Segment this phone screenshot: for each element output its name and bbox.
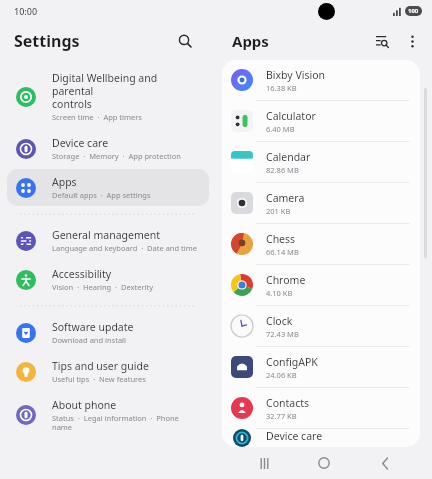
button[interactable]: Apps <box>7 169 209 206</box>
button[interactable]: Search and filter apps <box>370 29 394 53</box>
staticText: Language and keyboard · Date and time <box>52 243 197 253</box>
button[interactable]: Chess <box>222 224 420 264</box>
staticText: 66.14 MB <box>266 247 299 257</box>
staticText: Download and install <box>52 335 126 345</box>
staticText: 6.40 MB <box>266 124 295 134</box>
button[interactable]: Home <box>311 450 337 476</box>
staticText: Bixby Vision <box>266 68 326 82</box>
staticText: Camera <box>266 191 305 205</box>
staticText: Useful tips · New features <box>52 374 146 384</box>
staticText: About phone <box>52 398 117 412</box>
button[interactable]: Software update <box>7 314 209 351</box>
button[interactable]: Bixby Vision <box>222 60 420 100</box>
staticText: Storage · Memory · App protection <box>52 151 181 161</box>
staticText: 201 KB <box>266 206 291 216</box>
staticText: Default apps · App settings <box>52 190 151 200</box>
staticText: Vision · Hearing · Dexterity <box>52 282 154 292</box>
staticText: 72.43 MB <box>266 329 299 339</box>
staticText: 4.10 KB <box>266 288 293 298</box>
staticText: ConfigAPK <box>266 355 318 369</box>
staticText: 82.86 MB <box>266 165 299 175</box>
staticText: 24.06 KB <box>266 370 297 380</box>
button[interactable]: Chrome <box>222 265 420 305</box>
staticText: Status · Legal information · Phone name <box>52 413 200 432</box>
button[interactable]: Recent apps <box>251 450 277 476</box>
button[interactable]: More options <box>400 29 424 53</box>
staticText: 16.38 KB <box>266 83 297 93</box>
staticText: Device care <box>52 136 109 150</box>
button[interactable]: Calculator <box>222 101 420 141</box>
button[interactable]: Calendar <box>222 142 420 182</box>
staticText: 100 <box>408 7 419 15</box>
button[interactable]: Device care <box>7 130 209 167</box>
staticText: Settings <box>14 30 80 52</box>
staticText: Chrome <box>266 273 306 287</box>
button[interactable]: General management <box>7 222 209 259</box>
staticText: 32.77 KB <box>266 411 297 421</box>
staticText: Contacts <box>266 396 310 410</box>
staticText: Apps <box>52 175 77 189</box>
staticText: Chess <box>266 232 296 246</box>
staticText: Tips and user guide <box>52 359 149 373</box>
staticText: Accessibility <box>52 267 112 281</box>
staticText: Digital Wellbeing and parental controls <box>52 71 200 111</box>
button[interactable]: Camera <box>222 183 420 223</box>
staticText: 10:00 <box>14 5 38 17</box>
staticText: Clock <box>266 314 293 328</box>
staticText: Screen time · App timers <box>52 112 142 122</box>
button[interactable]: Tips and user guide <box>7 353 209 390</box>
staticText: Calculator <box>266 109 316 123</box>
button[interactable]: Digital Wellbeing and parental controls <box>7 65 209 128</box>
button[interactable]: Back <box>372 450 398 476</box>
button[interactable]: Clock <box>222 306 420 346</box>
button[interactable]: Contacts <box>222 388 420 428</box>
button[interactable]: Accessibility <box>7 261 209 298</box>
staticText: Calendar <box>266 150 311 164</box>
button[interactable]: Search settings <box>172 28 198 54</box>
staticText: Device care <box>266 429 323 443</box>
staticText: Software update <box>52 320 134 334</box>
button[interactable]: Device care <box>222 429 420 447</box>
button[interactable]: About phone <box>7 392 209 438</box>
staticText: Apps <box>232 31 269 51</box>
staticText: General management <box>52 228 160 242</box>
button[interactable]: ConfigAPK <box>222 347 420 387</box>
